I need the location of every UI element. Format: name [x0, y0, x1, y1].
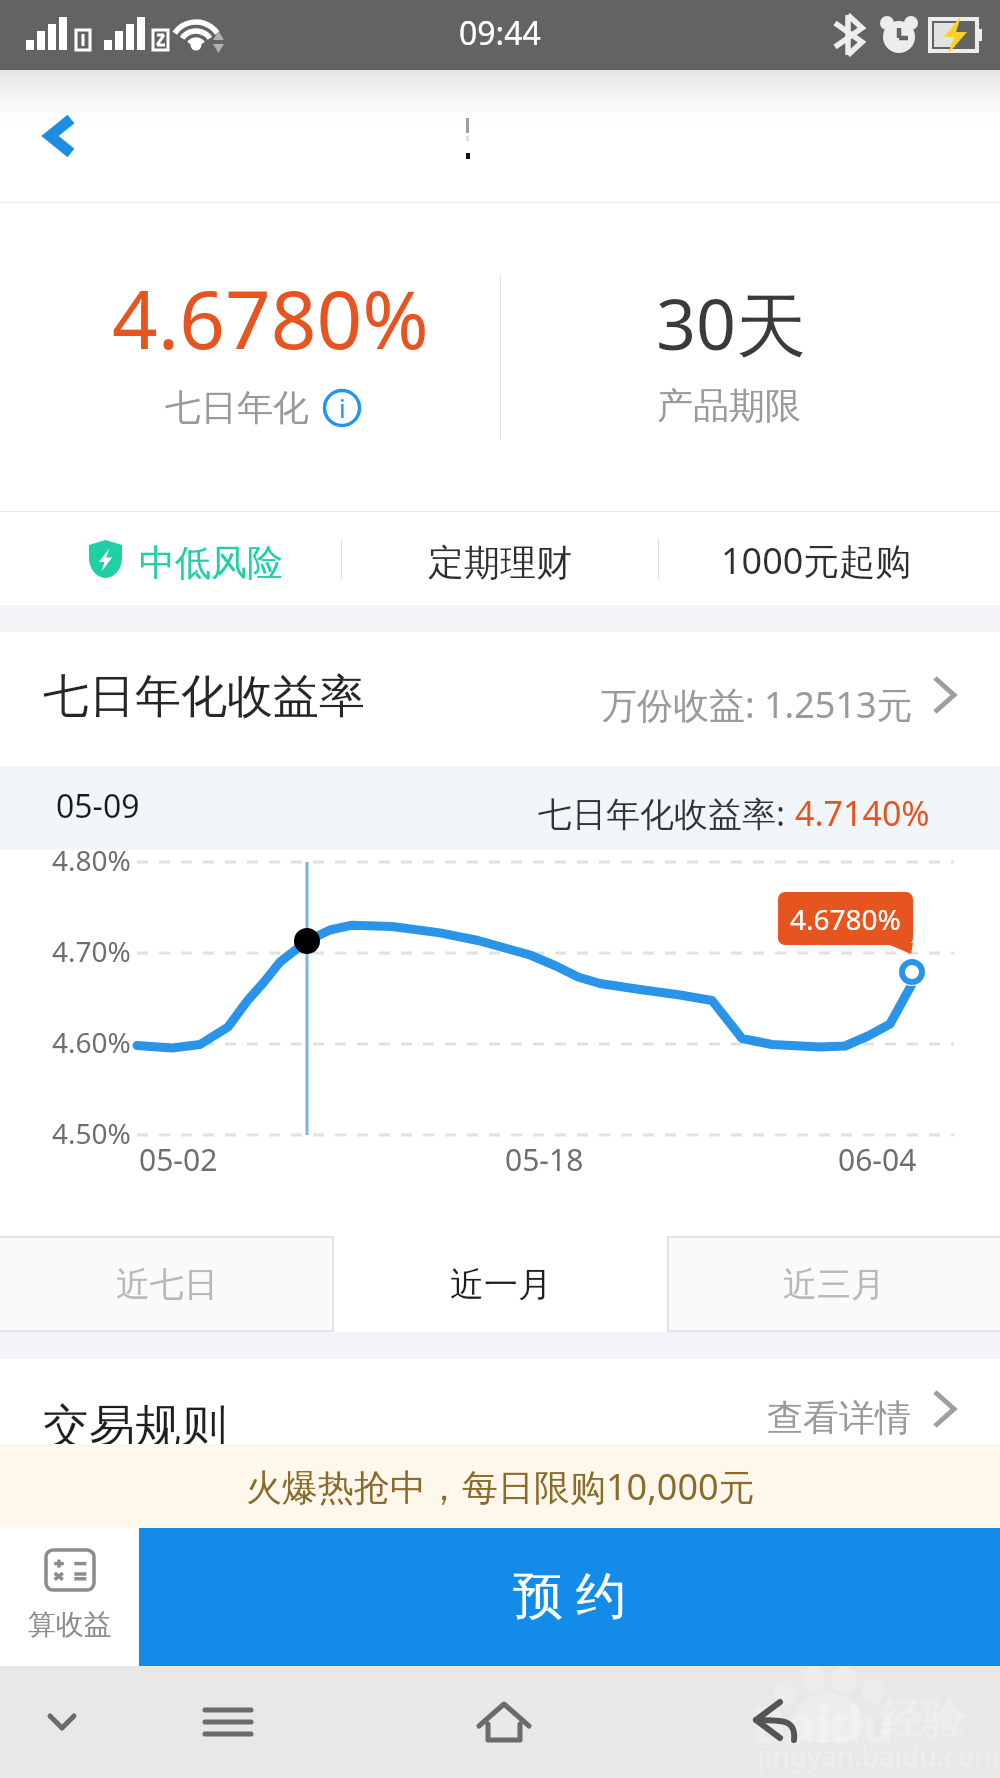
staticText: 火爆热抢中，每日限购10,000元 [246, 1462, 755, 1511]
staticText: 近三月 [783, 1263, 885, 1306]
staticText: 30天 [656, 275, 807, 371]
staticText: 万份收益: 1.2513元 [601, 680, 913, 729]
staticText: 4.7140% [795, 790, 930, 836]
button[interactable]: 近七日 [0, 1236, 334, 1332]
button[interactable]: 近一月 [334, 1236, 667, 1332]
staticText: i [339, 390, 346, 425]
staticText: 4.70% [52, 932, 131, 970]
staticText: 查看详情 [767, 1395, 911, 1440]
staticText: 05-09 [56, 784, 140, 828]
staticText: 算收益 [28, 1607, 112, 1642]
staticText: 06-04 [838, 1139, 917, 1180]
staticText: 中低风险 [139, 540, 283, 585]
staticText: 4.6780% [790, 900, 901, 938]
button[interactable]: Home [464, 1690, 544, 1754]
staticText: 1000元起购 [721, 536, 912, 585]
staticText: Baidu [752, 1690, 895, 1758]
button[interactable]: 近三月 [667, 1236, 1000, 1332]
button[interactable]: Back [26, 92, 106, 180]
staticText: 七日年化收益率 [43, 668, 365, 726]
staticText: 七日年化 [165, 385, 309, 430]
staticText: 交易规则 [43, 1398, 227, 1456]
staticText: 09:44 [459, 11, 541, 55]
staticText: jingyan.baidu.com [758, 1736, 1000, 1774]
staticText: 4.80% [52, 841, 131, 879]
staticText: 近七日 [116, 1263, 218, 1306]
staticText: 05-02 [139, 1139, 218, 1180]
button[interactable]: Menu [188, 1694, 268, 1750]
button[interactable]: Hide keyboard [22, 1694, 102, 1750]
button[interactable]: 交易规则 [0, 1359, 1000, 1444]
button[interactable]: Back [740, 1692, 826, 1752]
staticText: 4.60% [52, 1023, 131, 1061]
staticText: 定期理财 [428, 540, 572, 585]
staticText: 05-18 [505, 1139, 584, 1180]
staticText: 近一月 [450, 1263, 552, 1306]
button[interactable]: 七日年化收益率 [0, 632, 1000, 766]
staticText: 4.6780% [112, 263, 429, 372]
staticText: 4.50% [52, 1114, 131, 1152]
button[interactable]: 预 约 [139, 1528, 1000, 1666]
staticText: 七日年化收益率: [538, 790, 794, 836]
staticText: 预 约 [513, 1560, 626, 1628]
button[interactable]: 算收益 [0, 1528, 139, 1666]
staticText: 产品期限 [657, 383, 801, 428]
